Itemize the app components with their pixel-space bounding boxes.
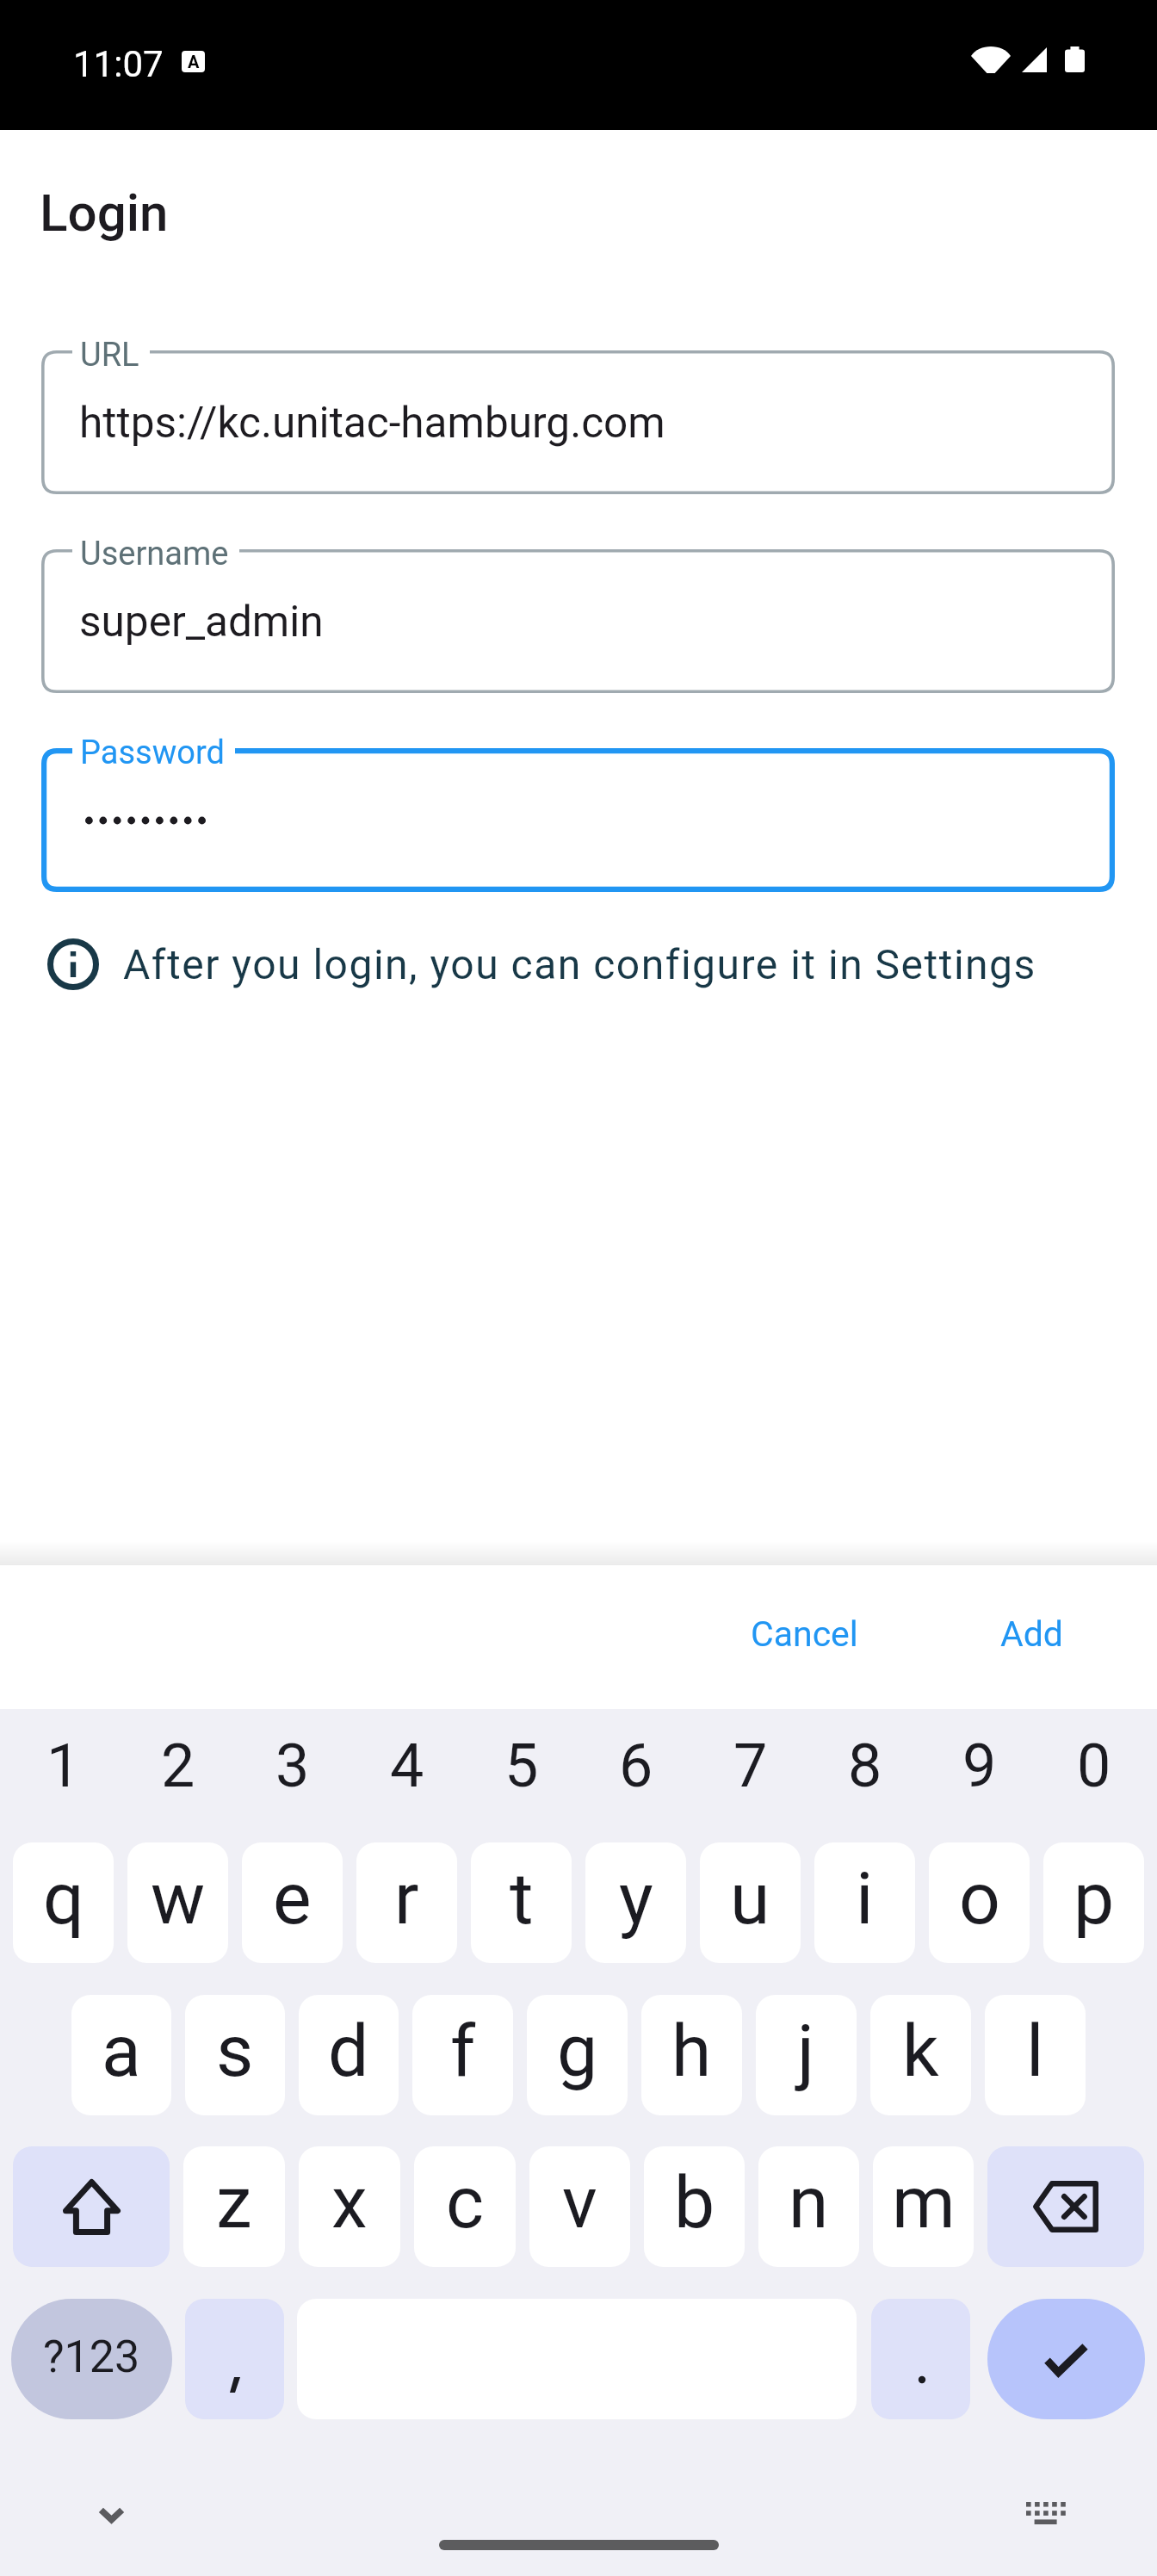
- staticText: a: [102, 2009, 141, 2093]
- button[interactable]: 7: [700, 1714, 801, 1817]
- staticText: v: [562, 2160, 597, 2245]
- staticText: 8: [848, 1731, 882, 1801]
- staticText: h: [671, 2009, 712, 2093]
- staticText: g: [557, 2009, 598, 2093]
- button[interactable]: Enter: [987, 2299, 1145, 2419]
- staticText: c: [446, 2160, 484, 2245]
- button[interactable]: r: [356, 1842, 457, 1963]
- button[interactable]: Add: [974, 1586, 1089, 1682]
- button[interactable]: a: [71, 1995, 171, 2115]
- staticText: q: [43, 1856, 84, 1941]
- staticText: 9: [962, 1731, 997, 1801]
- staticText: super_admin: [79, 597, 324, 647]
- button[interactable]: g: [527, 1995, 628, 2115]
- button[interactable]: Shift: [13, 2146, 170, 2267]
- button[interactable]: Backspace: [987, 2146, 1144, 2267]
- staticText: p: [1073, 1856, 1115, 1941]
- staticText: k: [902, 2009, 939, 2093]
- button[interactable]: z: [183, 2146, 285, 2267]
- button[interactable]: q: [13, 1842, 114, 1963]
- button[interactable]: Hide keyboard: [85, 2489, 137, 2541]
- button[interactable]: 1: [13, 1714, 114, 1817]
- staticText: A: [188, 52, 200, 71]
- staticText: r: [394, 1856, 419, 1941]
- staticText: 11:07: [73, 43, 164, 85]
- button[interactable]: 6: [585, 1714, 686, 1817]
- button[interactable]: n: [758, 2146, 859, 2267]
- button[interactable]: URL: [41, 350, 1115, 494]
- button[interactable]: 8: [814, 1714, 915, 1817]
- staticText: ?123: [43, 2331, 140, 2383]
- button[interactable]: 4: [356, 1714, 457, 1817]
- button[interactable]: 2: [127, 1714, 228, 1817]
- button[interactable]: Change keyboard: [1020, 2487, 1072, 2539]
- button[interactable]: l: [985, 1995, 1086, 2115]
- staticText: Cancel: [751, 1613, 858, 1655]
- staticText: 2: [161, 1731, 195, 1801]
- button[interactable]: c: [414, 2146, 516, 2267]
- staticText: l: [1026, 2009, 1044, 2093]
- button[interactable]: e: [242, 1842, 343, 1963]
- button[interactable]: x: [299, 2146, 400, 2267]
- button[interactable]: w: [127, 1842, 228, 1963]
- button[interactable]: b: [644, 2146, 745, 2267]
- staticText: After you login, you can configure it in…: [123, 940, 1036, 988]
- button[interactable]: Username: [41, 549, 1115, 693]
- staticText: w: [151, 1856, 206, 1941]
- staticText: 5: [504, 1731, 539, 1801]
- staticText: y: [619, 1856, 653, 1941]
- staticText: b: [674, 2160, 715, 2245]
- staticText: x: [331, 2160, 368, 2245]
- staticText: o: [959, 1856, 1000, 1941]
- staticText: 4: [390, 1731, 424, 1801]
- button[interactable]: f: [412, 1995, 513, 2115]
- button[interactable]: y: [585, 1842, 686, 1963]
- button[interactable]: 5: [471, 1714, 572, 1817]
- staticText: Add: [1000, 1613, 1063, 1655]
- staticText: 7: [733, 1731, 768, 1801]
- staticText: u: [730, 1856, 770, 1941]
- staticText: i: [856, 1856, 874, 1941]
- button[interactable]: i: [814, 1842, 915, 1963]
- staticText: https://kc.unitac-hamburg.com: [79, 398, 665, 448]
- button[interactable]: After you login, you can configure it in…: [47, 938, 1157, 991]
- staticText: m: [892, 2160, 956, 2245]
- button[interactable]: h: [641, 1995, 742, 2115]
- button[interactable]: j: [756, 1995, 857, 2115]
- button[interactable]: [185, 2299, 284, 2419]
- button[interactable]: s: [185, 1995, 285, 2115]
- staticText: 1: [46, 1731, 81, 1801]
- button[interactable]: p: [1043, 1842, 1144, 1963]
- button[interactable]: [871, 2299, 970, 2419]
- staticText: z: [216, 2160, 252, 2245]
- staticText: Username: [80, 535, 229, 573]
- button[interactable]: Password: [41, 748, 1115, 892]
- staticText: s: [216, 2009, 254, 2093]
- button[interactable]: 0: [1043, 1714, 1144, 1817]
- button[interactable]: t: [471, 1842, 572, 1963]
- staticText: 3: [275, 1731, 310, 1801]
- button[interactable]: v: [529, 2146, 630, 2267]
- staticText: n: [789, 2160, 829, 2245]
- staticText: 0: [1077, 1731, 1111, 1801]
- button[interactable]: d: [299, 1995, 399, 2115]
- staticText: Login: [40, 183, 169, 243]
- button[interactable]: u: [700, 1842, 801, 1963]
- staticText: 6: [619, 1731, 653, 1801]
- button[interactable]: 9: [929, 1714, 1030, 1817]
- staticText: d: [328, 2009, 369, 2093]
- staticText: t: [510, 1856, 534, 1941]
- staticText: URL: [80, 336, 139, 375]
- button[interactable]: 3: [242, 1714, 343, 1817]
- staticText: j: [797, 2009, 815, 2093]
- button[interactable]: ?123: [11, 2299, 172, 2419]
- button[interactable]: o: [929, 1842, 1030, 1963]
- staticText: f: [450, 2009, 476, 2093]
- button[interactable]: Cancel: [724, 1586, 884, 1682]
- staticText: e: [273, 1856, 312, 1941]
- staticText: Password: [80, 734, 225, 772]
- button[interactable]: m: [873, 2146, 974, 2267]
- button[interactable]: k: [870, 1995, 971, 2115]
